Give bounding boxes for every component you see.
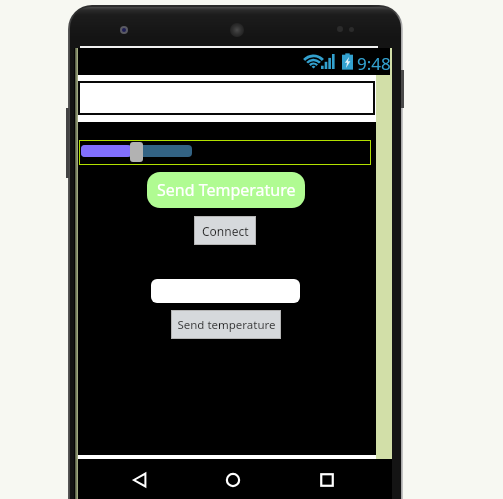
button[interactable]: Send Temperature xyxy=(147,172,305,208)
staticText: 9:48 xyxy=(357,52,391,75)
button[interactable]: Recent apps xyxy=(305,460,349,499)
button[interactable]: Back xyxy=(118,460,162,499)
button[interactable]: Home xyxy=(211,460,255,499)
button[interactable] xyxy=(79,140,371,165)
staticText: Connect xyxy=(202,223,249,239)
button[interactable]: Send temperature xyxy=(172,311,280,338)
button[interactable]: Connect xyxy=(195,217,255,244)
staticText: Send temperature xyxy=(177,317,276,333)
button[interactable] xyxy=(151,279,300,303)
staticText: Send Temperature xyxy=(157,179,296,201)
